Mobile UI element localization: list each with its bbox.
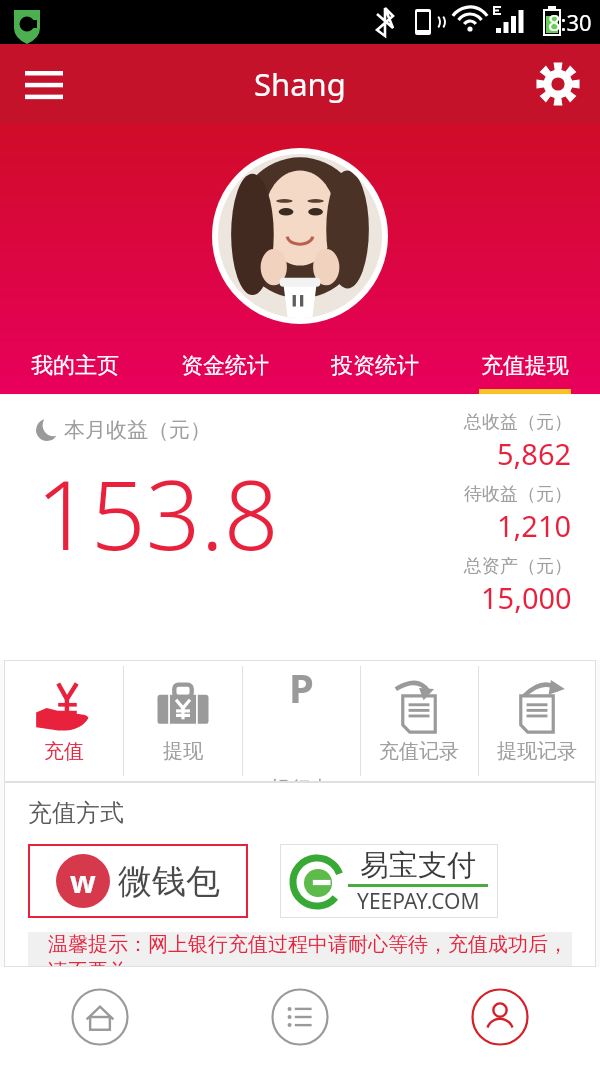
staticText: 1,210 [497,506,572,545]
button[interactable]: 投资统计 [300,338,450,394]
staticText: 待收益（元） [464,483,572,506]
staticText: 153.8 [36,447,279,578]
staticText: 充值记录 [379,739,459,764]
staticText: Shang [254,63,346,105]
staticText: 资金统计 [181,352,269,380]
staticText: 充值 [44,739,84,764]
button[interactable]: List [200,967,400,1067]
staticText: P [289,660,314,714]
staticText: 充值提现 [481,352,569,380]
button[interactable]: 提现 [123,660,242,782]
staticText: 提现 [163,739,203,764]
button[interactable]: w [28,844,248,918]
staticText: 微钱包 [118,860,220,903]
button[interactable]: 充值记录 [360,660,478,782]
staticText: 投资统计 [331,352,419,380]
button[interactable]: 资金统计 [150,338,300,394]
staticText: 易宝支付 [360,847,476,884]
staticText: 15,000 [481,578,572,617]
button[interactable]: 提现记录 [478,660,596,782]
button[interactable]: Profile photo [212,148,388,324]
staticText: 银行卡 [271,776,331,782]
staticText: YEEPAY.COM [357,887,480,916]
staticText: 温馨提示：网上银行充值过程中请耐心等待，充值成功后，请不要关 [48,932,572,967]
staticText: 总资产（元） [464,555,572,578]
staticText: 总收益（元） [464,411,572,434]
button[interactable]: 我的主页 [0,338,150,394]
button[interactable]: Menu [16,56,72,112]
staticText: 5,862 [497,434,572,473]
button[interactable]: P [242,660,360,782]
button[interactable]: 易宝支付 [280,844,498,918]
staticText: 提现记录 [497,739,577,764]
staticText: w [70,861,96,902]
staticText: 充值方式 [28,798,124,828]
staticText: 8:30 [548,7,592,37]
button[interactable]: 充值 [4,660,123,782]
button[interactable]: 充值提现 [450,338,600,394]
staticText: 本月收益（元） [64,417,211,443]
button[interactable]: Profile [400,967,600,1067]
staticText: 我的主页 [31,352,119,380]
button[interactable]: Home [0,967,200,1067]
button[interactable]: Settings [530,56,586,112]
